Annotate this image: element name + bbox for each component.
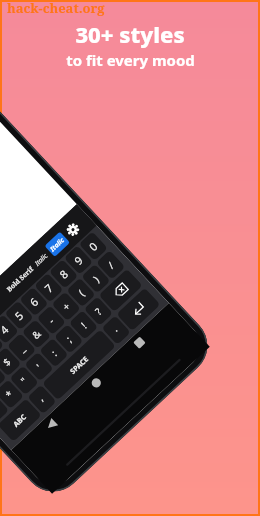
staticText: hack-cheat.org bbox=[7, 0, 105, 17]
staticText: 30+ styles bbox=[75, 19, 185, 49]
staticText: to fit every mood bbox=[66, 50, 195, 70]
